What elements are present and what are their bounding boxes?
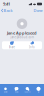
button[interactable]: Search <box>22 86 33 94</box>
button[interactable]: Me <box>33 86 44 94</box>
staticText: Back <box>4 8 13 13</box>
button[interactable]: Share <box>2 41 22 49</box>
staticText: jane@icloud.com <box>10 35 33 39</box>
staticText: Jane Appleseed <box>7 30 37 35</box>
staticText: Done <box>33 8 42 13</box>
button[interactable]: Chats <box>11 86 22 94</box>
staticText: Me <box>37 91 39 93</box>
button[interactable]: Home <box>0 86 11 94</box>
button[interactable]: Info <box>22 41 42 49</box>
staticText: Search <box>24 91 30 93</box>
button[interactable]: Back <box>1 8 13 13</box>
button[interactable]: Done <box>33 8 42 13</box>
staticText: 9:41 <box>3 1 10 7</box>
staticText: Info <box>29 45 35 49</box>
staticText: Home <box>3 91 7 93</box>
staticText: Share <box>8 45 15 49</box>
staticText: Chats <box>14 91 18 93</box>
